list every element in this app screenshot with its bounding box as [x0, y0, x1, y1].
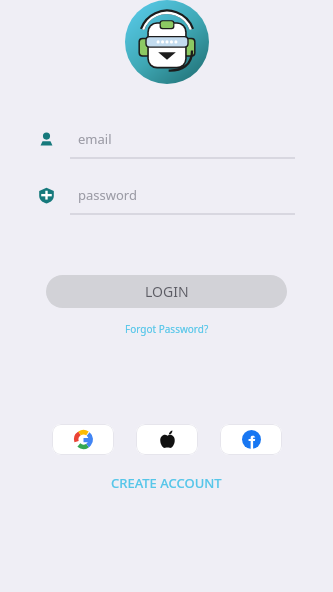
- button[interactable]: LOGIN: [46, 275, 287, 308]
- button[interactable]: Sign in with Google: [52, 424, 114, 455]
- staticText: Forgot Password?: [125, 322, 209, 336]
- button[interactable]: Sign in with Apple: [136, 424, 198, 455]
- staticText: LOGIN: [145, 282, 189, 301]
- staticText: email: [78, 130, 112, 148]
- staticText: CREATE ACCOUNT: [111, 474, 222, 492]
- button[interactable]: CREATE ACCOUNT: [108, 471, 225, 495]
- staticText: password: [78, 186, 137, 204]
- button[interactable]: Forgot Password?: [122, 319, 212, 339]
- button[interactable]: Sign in with Facebook: [220, 424, 282, 455]
